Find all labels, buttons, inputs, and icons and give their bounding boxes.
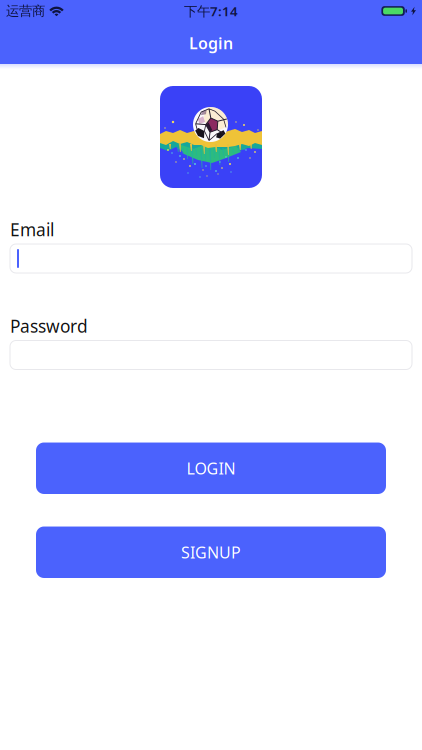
button[interactable]: LOGIN: [36, 442, 386, 494]
button[interactable]: Email: [10, 244, 412, 273]
button[interactable]: SIGNUP: [36, 526, 386, 578]
button[interactable]: Password: [10, 340, 412, 369]
staticText: 下午7:14: [184, 2, 238, 20]
staticText: LOGIN: [186, 458, 235, 479]
staticText: Login: [189, 32, 233, 54]
staticText: Email: [10, 218, 54, 241]
staticText: SIGNUP: [181, 542, 241, 563]
staticText: 运营商: [6, 3, 45, 19]
staticText: Password: [10, 314, 88, 337]
